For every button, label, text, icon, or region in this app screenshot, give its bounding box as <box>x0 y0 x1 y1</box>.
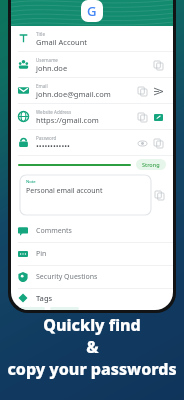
button[interactable]: Password <box>11 130 173 156</box>
staticText: & <box>86 336 99 358</box>
staticText: Comments <box>36 226 72 236</box>
button[interactable]: Copy <box>150 57 166 73</box>
staticText: Email <box>36 83 48 89</box>
staticText: •••••••••••• <box>36 141 70 151</box>
button[interactable]: Send <box>150 83 166 99</box>
staticText: Username <box>36 57 58 63</box>
staticText: Security Questions <box>36 272 98 282</box>
staticText: Password <box>36 135 57 141</box>
staticText: Pin <box>36 249 47 259</box>
button[interactable]: Email <box>11 78 173 104</box>
button[interactable]: Username <box>11 52 173 78</box>
button[interactable]: Copy note <box>151 187 167 203</box>
staticText: G <box>87 2 97 20</box>
staticText: Strong <box>142 161 160 168</box>
button[interactable]: Note <box>20 175 151 215</box>
button[interactable]: work <box>18 307 45 310</box>
button[interactable]: Comments <box>11 220 173 243</box>
staticText: Website Address <box>36 109 72 115</box>
button[interactable]: Title <box>11 26 173 52</box>
staticText: john.doe@gmail.com <box>36 89 111 99</box>
button[interactable]: Copy <box>134 109 150 125</box>
button[interactable]: Account logo <box>81 0 103 22</box>
button[interactable]: Tags <box>18 293 53 303</box>
staticText: Quickly find <box>43 314 141 336</box>
button[interactable]: Copy <box>150 135 166 151</box>
staticText: Note <box>26 179 36 185</box>
button[interactable]: Security Questions <box>11 266 173 289</box>
button[interactable]: Strong <box>136 159 166 170</box>
button[interactable]: Pin <box>11 243 173 266</box>
staticText: https://gmail.com <box>36 115 99 125</box>
button[interactable]: Show password <box>134 135 150 151</box>
button[interactable]: Copy <box>134 83 150 99</box>
staticText: Gmail Account <box>36 37 88 47</box>
staticText: copy your passwords <box>7 358 177 380</box>
button[interactable]: Website Address <box>11 104 173 130</box>
staticText: john.doe <box>36 63 68 73</box>
staticText: Personal email account <box>26 186 103 196</box>
button[interactable]: Open link <box>150 109 166 125</box>
staticText: Title <box>36 31 45 37</box>
staticText: Tags <box>36 293 53 303</box>
